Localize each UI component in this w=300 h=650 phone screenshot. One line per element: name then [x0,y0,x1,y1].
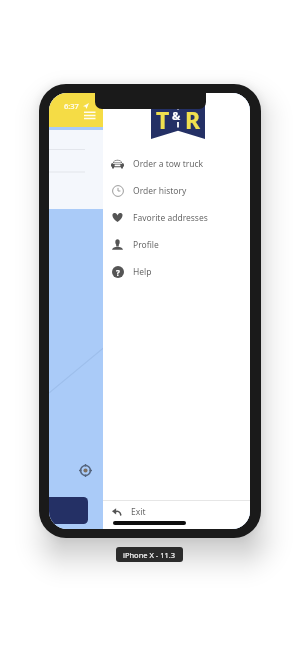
button[interactable]: Order history [103,177,250,204]
button[interactable]: Favorite addresses [103,204,250,231]
staticText: R [185,104,201,135]
staticText: ? [116,267,120,278]
staticText: Profile [133,239,159,251]
staticText: T [156,104,170,135]
staticText: Help [133,266,152,278]
button[interactable]: Profile [103,231,250,258]
button[interactable]: Exit [103,502,250,521]
staticText: Favorite addresses [133,212,208,224]
button[interactable]: My location [79,464,92,477]
staticText: & [172,108,181,123]
staticText: Order history [133,185,187,197]
button[interactable]: Open navigation menu [82,108,97,121]
staticText: 6:37 [64,101,79,111]
button[interactable]: ? [103,258,250,285]
staticText: Exit [131,506,146,518]
staticText: Order a tow truck [133,158,204,170]
button[interactable]: Order a tow truck [103,150,250,177]
staticText: iPhone X - 11.3 [123,550,176,560]
